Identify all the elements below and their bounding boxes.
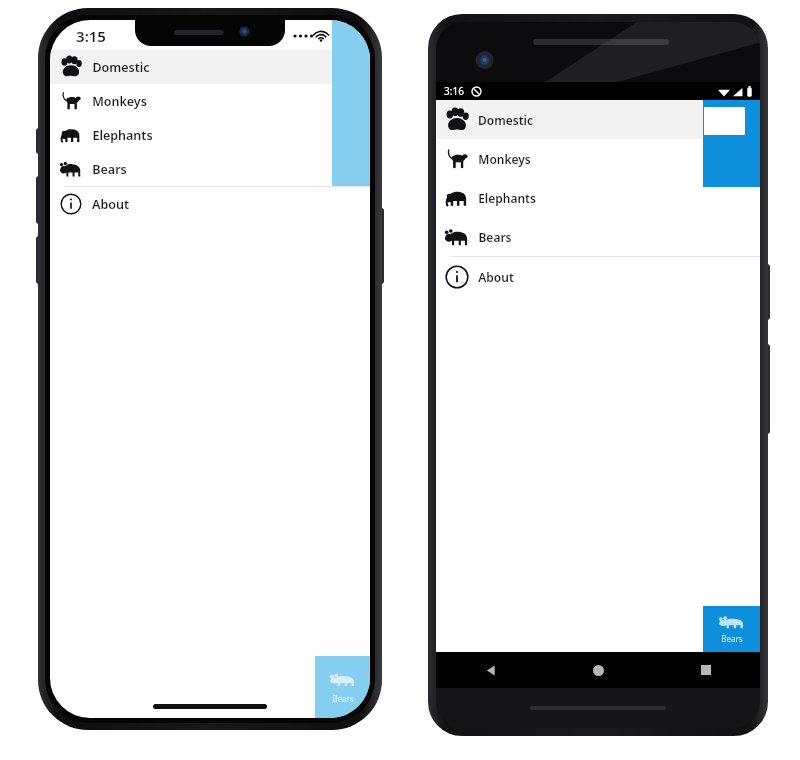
staticText: Monkeys [92,93,147,110]
button[interactable]: Bears [703,606,760,652]
staticText: About [92,196,129,213]
button[interactable]: Monkeys [50,84,370,118]
button[interactable]: Back [436,652,544,688]
button[interactable]: About [50,187,370,221]
staticText: Bears [721,633,743,644]
button[interactable]: Bears [315,656,370,718]
staticText: Domestic [92,59,150,76]
button[interactable]: Bears [50,152,370,186]
staticText: Bears [478,229,512,245]
staticText: Monkeys [478,151,531,167]
staticText: About [478,269,514,285]
button[interactable]: Home [544,652,652,688]
button[interactable]: Domestic [50,50,370,84]
staticText: 3:16 [444,84,464,98]
button[interactable]: Recent apps [652,652,760,688]
button[interactable]: Domestic [436,100,760,139]
staticText: 3:15 [76,26,106,46]
staticText: Domestic [478,112,533,128]
button[interactable]: Elephants [50,118,370,152]
staticText: Bears [332,693,354,704]
staticText: Bears [92,161,127,178]
button[interactable]: About [436,257,760,296]
button[interactable]: Bears [436,217,760,256]
button[interactable]: Elephants [436,178,760,217]
staticText: Elephants [92,127,153,144]
staticText: Elephants [478,190,536,206]
button[interactable]: Monkeys [436,139,760,178]
